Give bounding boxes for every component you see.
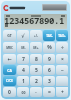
button[interactable]: √: [17, 30, 29, 41]
staticText: ÷: [61, 44, 64, 51]
staticText: M+: [33, 45, 39, 50]
button[interactable]: 2: [30, 76, 42, 86]
staticText: ←: [7, 56, 12, 62]
staticText: 2: [35, 78, 38, 85]
staticText: ·: [35, 89, 37, 96]
staticText: √: [21, 33, 25, 39]
button[interactable]: TAX+: [56, 30, 68, 41]
button[interactable]: =: [43, 87, 55, 97]
staticText: MRC: [6, 46, 13, 50]
staticText: 1: [22, 78, 25, 85]
staticText: M-: [21, 45, 26, 50]
button[interactable]: 4: [17, 65, 29, 75]
button[interactable]: %: [43, 42, 55, 53]
button[interactable]: ←: [3, 54, 16, 64]
staticText: 6: [48, 67, 51, 74]
button[interactable]: 0: [3, 87, 16, 97]
button[interactable]: GT: [3, 30, 16, 41]
button[interactable]: +/-: [30, 30, 42, 41]
staticText: +: [61, 89, 64, 96]
button[interactable]: 8: [30, 54, 42, 64]
staticText: 4: [22, 67, 25, 74]
button[interactable]: 3: [43, 76, 55, 86]
staticText: ×: [61, 56, 64, 63]
button[interactable]: 7: [17, 54, 29, 64]
button[interactable]: M-: [17, 42, 29, 53]
staticText: C/CE: [6, 79, 13, 83]
staticText: 5: [35, 67, 38, 74]
button[interactable]: −: [56, 65, 68, 75]
staticText: 9: [48, 56, 51, 63]
staticText: −: [61, 67, 64, 74]
button[interactable]: 5: [30, 65, 42, 75]
button[interactable]: ÷: [56, 42, 68, 53]
staticText: 7: [22, 56, 25, 63]
staticText: GT: [7, 33, 12, 38]
staticText: 0: [8, 89, 11, 96]
staticText: TAX-: [46, 34, 53, 38]
button[interactable]: 00: [17, 87, 29, 97]
staticText: TAX+: [58, 34, 66, 38]
button[interactable]: 6: [43, 65, 55, 75]
button[interactable]: MRC: [3, 42, 16, 53]
staticText: 1234567890.12: [4, 14, 65, 28]
button[interactable]: Key: [56, 76, 68, 86]
button[interactable]: 1: [17, 76, 29, 86]
button[interactable]: +: [56, 87, 68, 97]
staticText: =: [48, 89, 51, 96]
staticText: 00: [21, 90, 26, 95]
staticText: +/-: [34, 34, 38, 38]
button[interactable]: ·: [30, 87, 42, 97]
staticText: 8: [35, 56, 38, 63]
staticText: CA: [7, 68, 12, 73]
staticText: 3: [48, 78, 51, 85]
button[interactable]: 9: [43, 54, 55, 64]
button[interactable]: TAX-: [43, 30, 55, 41]
button[interactable]: M+: [30, 42, 42, 53]
button[interactable]: CA: [3, 65, 16, 75]
button[interactable]: C/CE: [3, 76, 16, 86]
button[interactable]: ×: [56, 54, 68, 64]
staticText: %: [47, 44, 52, 51]
